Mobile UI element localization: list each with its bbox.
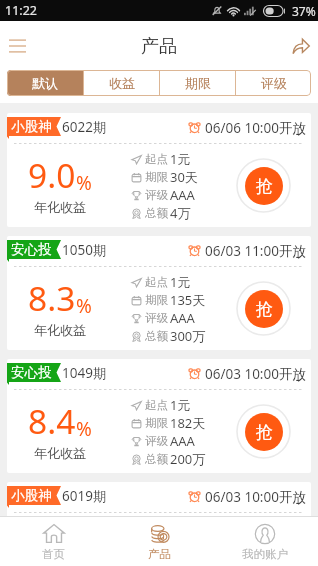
staticText: %	[76, 293, 92, 319]
staticText: 产品	[141, 35, 177, 58]
staticText: 安心投	[11, 241, 52, 258]
staticText: 抢	[256, 299, 273, 320]
staticText: 06/03 10:00开放	[205, 488, 306, 506]
button[interactable]: 评级	[236, 70, 311, 96]
staticText: 小股神	[11, 118, 52, 135]
button[interactable]: 默认	[7, 70, 83, 96]
button[interactable]: 收益	[84, 70, 159, 96]
staticText: 首页	[42, 547, 65, 561]
staticText: 小股神	[11, 487, 52, 504]
staticText: 总额	[145, 329, 168, 343]
staticText: 1049期	[62, 364, 107, 382]
staticText: 总额	[145, 206, 168, 220]
staticText: 06/03 10:00开放	[205, 365, 306, 383]
staticText: 抢	[256, 422, 273, 443]
staticText: 1元	[170, 396, 191, 414]
staticText: 年化收益	[34, 445, 86, 461]
staticText: AAA	[170, 432, 195, 450]
button[interactable]: 产品	[106, 517, 212, 566]
staticText: 200万	[170, 450, 206, 468]
staticText: AAA	[170, 309, 195, 327]
staticText: 9.0	[28, 152, 76, 198]
staticText: 评级	[145, 188, 168, 202]
button[interactable]: 安心投	[7, 236, 311, 350]
staticText: AAA	[170, 186, 195, 204]
staticText: 总额	[145, 452, 168, 466]
button[interactable]: 抢	[236, 158, 291, 213]
staticText: 期限	[185, 75, 211, 91]
staticText: 37%	[292, 3, 316, 19]
staticText: 期限	[145, 170, 168, 184]
staticText: 我的账户	[242, 547, 288, 561]
staticText: %	[76, 416, 92, 442]
button[interactable]: 抢	[236, 404, 291, 459]
staticText: 182天	[170, 414, 206, 432]
staticText: 产品	[148, 547, 171, 561]
staticText: 135天	[170, 291, 206, 309]
staticText: 默认	[32, 75, 58, 91]
staticText: 抢	[256, 176, 273, 197]
staticText: 收益	[109, 75, 135, 91]
staticText: 30天	[170, 168, 198, 186]
staticText: 评级	[261, 75, 287, 91]
staticText: 起点	[145, 275, 168, 289]
button[interactable]: 期限	[160, 70, 235, 96]
staticText: 4万	[170, 204, 191, 222]
staticText: 6022期	[62, 118, 107, 136]
staticText: 06/06 10:00开放	[205, 119, 306, 137]
staticText: 1元	[170, 150, 191, 168]
button[interactable]: 安心投	[7, 359, 311, 473]
staticText: 期限	[145, 293, 168, 307]
button[interactable]: 抢	[236, 281, 291, 336]
staticText: 6019期	[62, 487, 107, 505]
staticText: 1050期	[62, 241, 107, 259]
button[interactable]: 小股神	[7, 113, 311, 227]
button[interactable]: 我的账户	[212, 517, 318, 566]
staticText: 评级	[145, 311, 168, 325]
button[interactable]: Share	[270, 22, 318, 70]
button[interactable]: Menu	[0, 22, 48, 70]
staticText: 期限	[145, 416, 168, 430]
button[interactable]: 小股神	[7, 482, 311, 516]
staticText: 安心投	[11, 364, 52, 381]
staticText: 起点	[145, 152, 168, 166]
staticText: 11:22	[5, 2, 37, 19]
staticText: 评级	[145, 434, 168, 448]
staticText: 300万	[170, 327, 206, 345]
staticText: 1元	[170, 273, 191, 291]
staticText: 8.4	[28, 398, 76, 444]
staticText: 年化收益	[34, 199, 86, 215]
staticText: 8.3	[28, 275, 76, 321]
staticText: 起点	[145, 398, 168, 412]
staticText: 06/03 11:00开放	[205, 242, 306, 260]
staticText: %	[76, 170, 92, 196]
staticText: 年化收益	[34, 322, 86, 338]
button[interactable]: 首页	[0, 517, 106, 566]
